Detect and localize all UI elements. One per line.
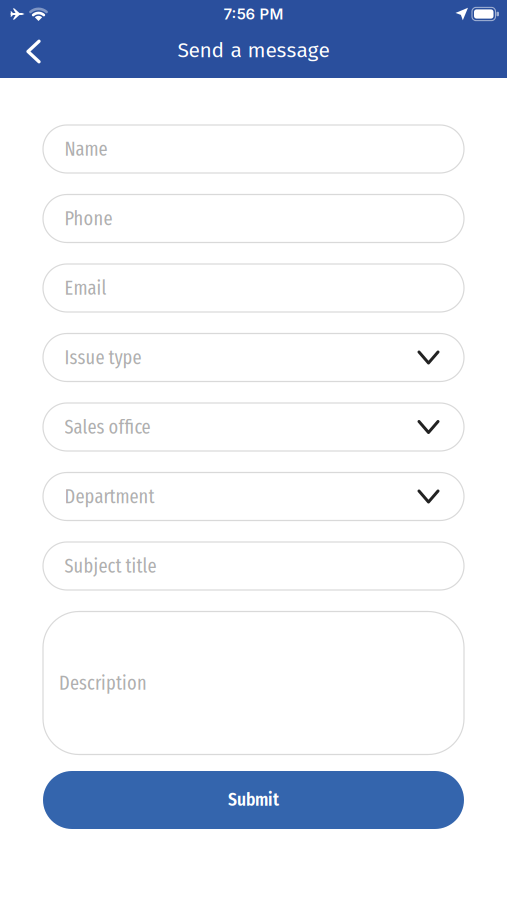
button[interactable]: Name [43,125,464,173]
staticText: Name [64,137,107,161]
button[interactable]: Phone [43,194,464,242]
button[interactable]: Description [43,611,464,754]
button[interactable]: Issue type [43,333,464,381]
staticText: Phone [64,206,112,230]
button[interactable]: Submit [43,771,464,829]
button[interactable]: Email [43,264,464,312]
staticText: Issue type [64,345,141,369]
staticText: 7:56 PM [223,5,283,23]
button[interactable]: Subject title [43,542,464,590]
button[interactable]: Department [43,472,464,520]
button[interactable]: Sales office [43,403,464,451]
staticText: Department [64,484,154,508]
button[interactable]: Back [0,32,55,74]
staticText: Send a message [177,38,329,63]
staticText: Submit [228,789,279,810]
staticText: Subject title [64,554,156,578]
staticText: Email [64,276,106,300]
staticText: Description [59,671,147,695]
staticText: Sales office [64,415,150,439]
